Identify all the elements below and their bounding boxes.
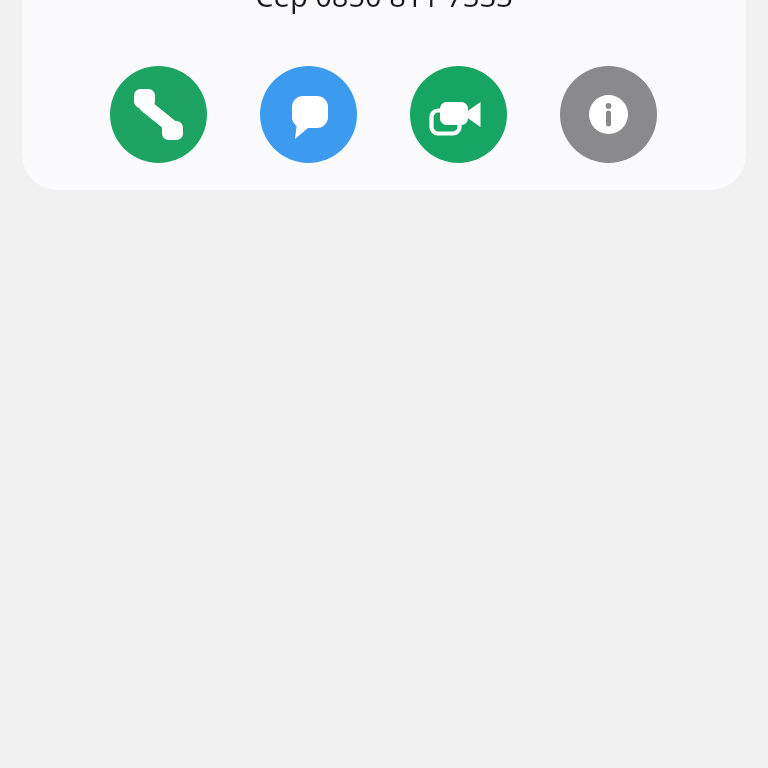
- button[interactable]: Contact info: [560, 66, 657, 163]
- button[interactable]: Call: [110, 66, 207, 163]
- button[interactable]: Video call: [410, 66, 507, 163]
- staticText: Cep 0850 811 7333: [255, 0, 513, 15]
- button[interactable]: Cep 0850 811 7333: [22, 0, 746, 16]
- button[interactable]: Message: [260, 66, 357, 163]
